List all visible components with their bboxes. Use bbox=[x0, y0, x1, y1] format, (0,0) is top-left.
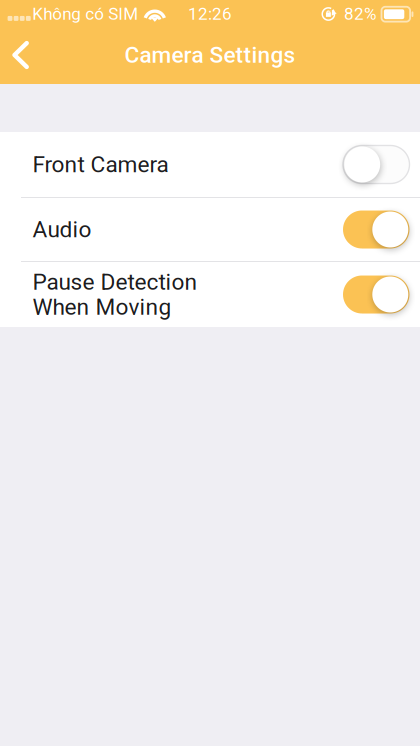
staticText: 12:26 bbox=[188, 4, 232, 24]
staticText: Audio bbox=[32, 216, 91, 243]
button[interactable]: Pause Detection bbox=[0, 262, 420, 327]
button[interactable]: Back bbox=[0, 26, 45, 84]
staticText: Camera Settings bbox=[124, 42, 295, 68]
staticText: Pause Detection bbox=[32, 269, 197, 295]
staticText: When Moving bbox=[32, 294, 171, 320]
staticText: Front Camera bbox=[32, 151, 168, 178]
staticText: 82% bbox=[344, 4, 377, 24]
button[interactable]: Audio bbox=[0, 198, 420, 261]
staticText: Không có SIM bbox=[32, 4, 138, 24]
button[interactable]: Front Camera bbox=[0, 132, 420, 197]
